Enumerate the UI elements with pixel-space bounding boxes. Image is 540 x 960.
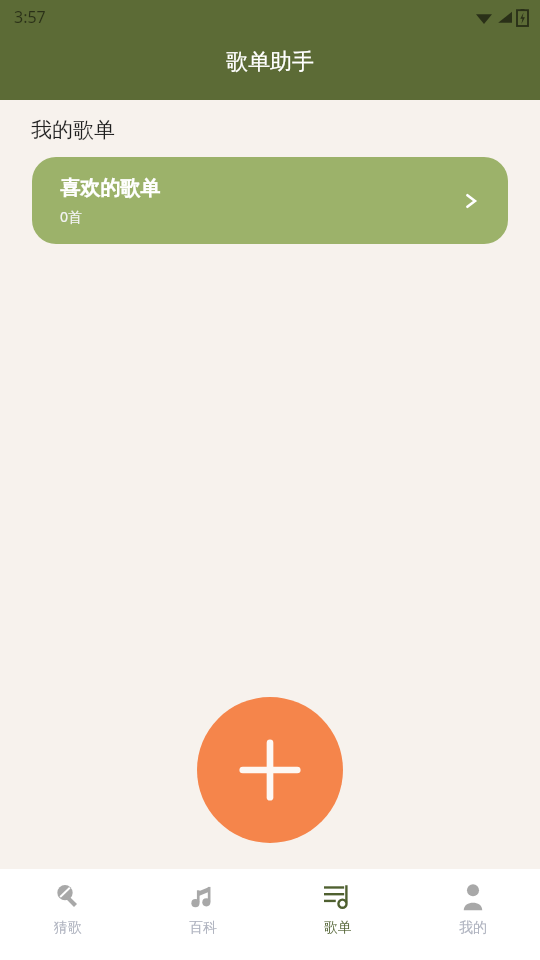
staticText: 我的歌单 xyxy=(31,117,115,143)
button[interactable]: 歌单 xyxy=(270,869,405,937)
staticText: 歌单助手 xyxy=(226,48,314,76)
button[interactable]: 我的 xyxy=(405,869,540,937)
button[interactable]: Add playlist xyxy=(197,697,343,843)
button[interactable]: 百科 xyxy=(135,869,270,937)
staticText: 百科 xyxy=(189,919,217,937)
staticText: 歌单 xyxy=(324,919,352,937)
button[interactable]: 猜歌 xyxy=(0,869,135,937)
staticText: 猜歌 xyxy=(54,919,82,937)
staticText: 喜欢的歌单 xyxy=(60,176,160,201)
staticText: 我的 xyxy=(459,919,487,937)
staticText: 3:57 xyxy=(14,6,46,28)
button[interactable]: 喜欢的歌单 xyxy=(32,157,508,244)
staticText: 0首 xyxy=(60,207,83,226)
